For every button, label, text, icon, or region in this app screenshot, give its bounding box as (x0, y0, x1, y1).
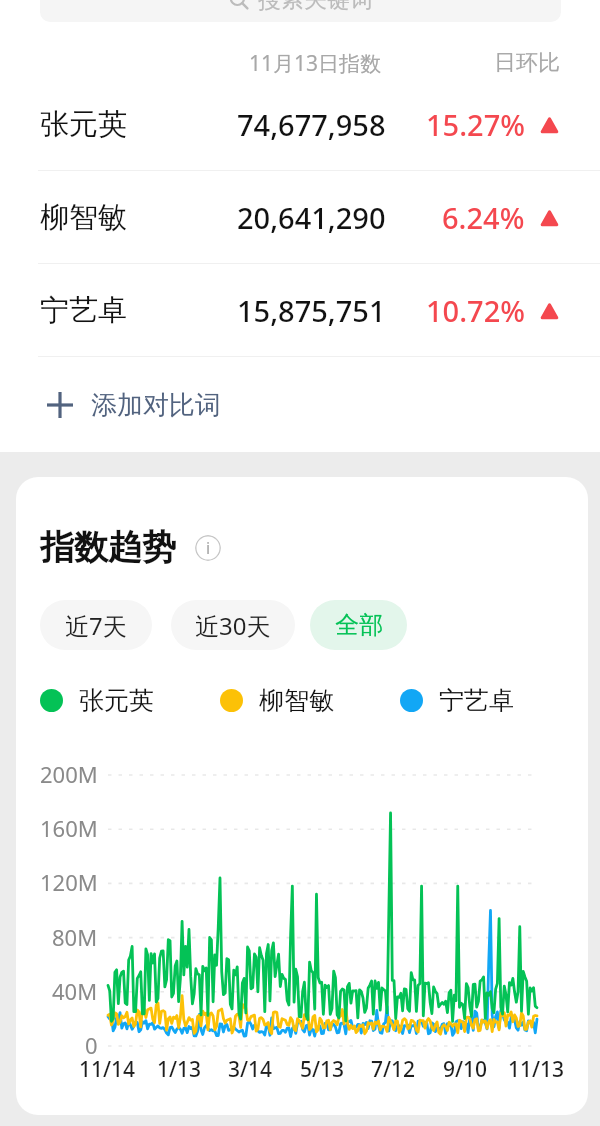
staticText: 11月13日指数 (249, 49, 382, 78)
staticText: 40M (52, 976, 98, 1006)
staticText: 200M (40, 759, 98, 789)
button[interactable]: Info (195, 535, 221, 561)
staticText: 10.72% (426, 291, 525, 330)
button[interactable]: 柳智敏 (0, 171, 600, 264)
button[interactable]: 添加对比词 (40, 374, 221, 436)
button[interactable]: Search (40, 0, 561, 22)
staticText: 近7天 (65, 609, 127, 642)
staticText: 张元英 (40, 106, 127, 143)
staticText: 宁艺卓 (439, 685, 514, 716)
staticText: i (206, 537, 211, 559)
button[interactable]: 张元英 (0, 78, 600, 171)
staticText: 柳智敏 (40, 199, 127, 236)
button[interactable]: 宁艺卓 (400, 684, 514, 716)
staticText: 20,641,290 (237, 198, 386, 237)
staticText: 74,677,958 (237, 105, 386, 144)
staticText: 120M (40, 867, 98, 897)
button[interactable]: 张元英 (40, 684, 154, 716)
staticText: 指数趋势 (40, 526, 176, 569)
staticText: 80M (52, 922, 98, 952)
staticText: 搜索关键词 (258, 0, 373, 14)
button[interactable]: 近30天 (171, 600, 295, 650)
button[interactable]: 宁艺卓 (0, 264, 600, 357)
staticText: 张元英 (79, 685, 154, 716)
staticText: 11/14 (79, 1055, 136, 1084)
staticText: 柳智敏 (259, 685, 334, 716)
staticText: 0 (85, 1030, 98, 1060)
staticText: 宁艺卓 (40, 292, 127, 329)
staticText: 11/13 (508, 1055, 565, 1084)
staticText: 160M (40, 813, 98, 843)
staticText: 添加对比词 (91, 389, 221, 422)
staticText: 日环比 (494, 49, 560, 77)
staticText: 15.27% (426, 105, 525, 144)
button[interactable]: 柳智敏 (220, 684, 334, 716)
staticText: 6.24% (442, 198, 525, 237)
staticText: 15,875,751 (237, 291, 386, 330)
staticText: 全部 (335, 610, 383, 640)
staticText: 9/10 (443, 1055, 488, 1084)
button[interactable]: 全部 (310, 600, 407, 650)
staticText: 1/13 (157, 1055, 202, 1084)
staticText: 3/14 (228, 1055, 273, 1084)
button[interactable]: 近7天 (40, 600, 152, 650)
staticText: 7/12 (371, 1055, 416, 1084)
staticText: 5/13 (300, 1055, 345, 1084)
staticText: 近30天 (195, 609, 271, 642)
